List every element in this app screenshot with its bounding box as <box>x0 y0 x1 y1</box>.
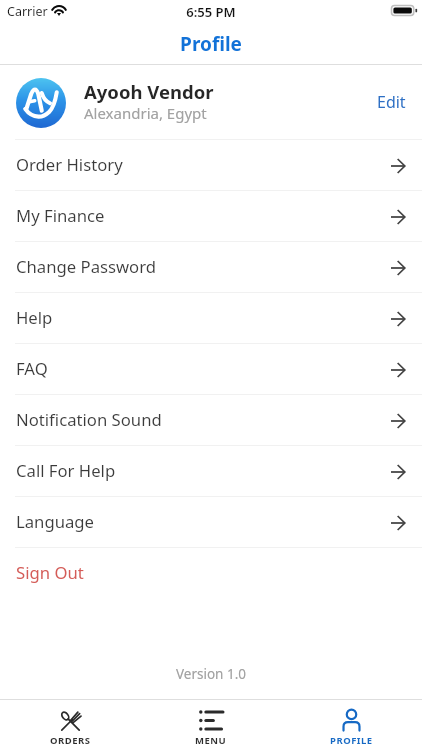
other: My Finance <box>391 210 405 224</box>
other: Order History <box>391 159 405 173</box>
staticText: Sign Out <box>16 561 84 584</box>
staticText: Order History <box>16 153 123 176</box>
button[interactable]: Notification Sound <box>0 395 422 446</box>
staticText: MENU <box>195 734 227 747</box>
staticText: Carrier <box>7 3 48 20</box>
staticText: PROFILE <box>330 734 373 747</box>
staticText: Alexandria, Egypt <box>84 103 207 123</box>
button[interactable]: Help <box>0 293 422 344</box>
staticText: FAQ <box>16 357 48 380</box>
other: FAQ <box>391 363 405 377</box>
button[interactable]: Change Password <box>0 242 422 293</box>
button[interactable]: Edit <box>363 82 422 124</box>
button[interactable]: ORDERS <box>0 699 140 750</box>
button[interactable]: Sign Out <box>0 548 422 599</box>
staticText: Notification Sound <box>16 408 162 431</box>
staticText: Edit <box>377 91 406 113</box>
other: Call For Help <box>391 465 405 479</box>
button[interactable]: MENU <box>140 699 281 750</box>
button[interactable]: Language <box>0 497 422 548</box>
staticText: ORDERS <box>50 734 91 747</box>
staticText: 6:55 PM <box>186 3 236 21</box>
button[interactable]: PROFILE <box>281 699 422 750</box>
staticText: Profile <box>180 31 242 57</box>
other: Change Password <box>391 261 405 275</box>
staticText: Call For Help <box>16 459 116 482</box>
button[interactable]: Ayooh Vendor <box>0 65 422 140</box>
other: Language <box>391 516 405 530</box>
button[interactable]: Call For Help <box>0 446 422 497</box>
button[interactable]: FAQ <box>0 344 422 395</box>
button[interactable]: Order History <box>0 140 422 191</box>
staticText: Help <box>16 306 53 329</box>
staticText: Language <box>16 510 95 533</box>
staticText: Version 1.0 <box>0 665 422 683</box>
button[interactable]: My Finance <box>0 191 422 242</box>
other: Help <box>391 312 405 326</box>
staticText: Ayooh Vendor <box>84 79 214 104</box>
other: Notification Sound <box>391 414 405 428</box>
staticText: My Finance <box>16 204 105 227</box>
staticText: Change Password <box>16 255 157 278</box>
